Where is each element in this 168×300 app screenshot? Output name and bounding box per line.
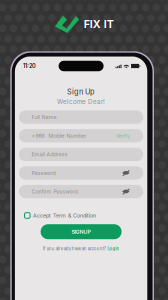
button[interactable]: Accept Term & Condition	[15, 198, 147, 219]
button[interactable]: Confirm Password	[19, 185, 143, 198]
staticText: Full Name	[31, 114, 56, 120]
button[interactable]: Login	[107, 246, 119, 251]
staticText: +966 Mobile Number	[31, 132, 86, 139]
staticText: SIGNUP	[72, 228, 91, 235]
staticText: Email Address	[31, 151, 67, 158]
button[interactable]: Password	[19, 166, 143, 180]
staticText: Confirm Password	[31, 188, 77, 195]
staticText: Sign Up	[67, 87, 95, 96]
staticText: Verify	[116, 132, 130, 139]
staticText: Login	[107, 246, 119, 251]
staticText: If you already have an account?	[43, 246, 106, 251]
staticText: FIX IT	[84, 17, 114, 30]
button[interactable]: Full Name	[19, 110, 143, 124]
button[interactable]: +966 Mobile Number	[19, 129, 143, 142]
button[interactable]: SIGNUP	[41, 224, 122, 239]
staticText: Accept Term & Condition	[33, 212, 96, 219]
staticText: 11:20	[23, 63, 36, 69]
staticText: Welcome Dear!	[57, 98, 105, 105]
button[interactable]: Email Address	[19, 148, 143, 161]
staticText: Password	[31, 170, 55, 176]
